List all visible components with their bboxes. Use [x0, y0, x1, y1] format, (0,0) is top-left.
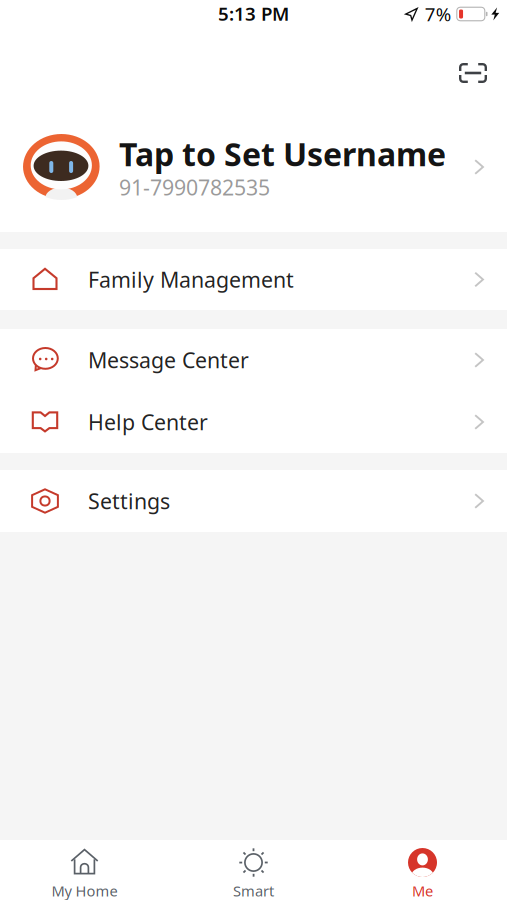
- button[interactable]: Help Center: [0, 391, 507, 453]
- staticText: My Home: [51, 881, 117, 900]
- button[interactable]: Message Center: [0, 329, 507, 391]
- button[interactable]: Settings: [0, 470, 507, 532]
- staticText: Message Center: [88, 346, 249, 374]
- staticText: 7%: [425, 2, 452, 26]
- staticText: Smart: [233, 881, 274, 900]
- staticText: Tap to Set Username: [119, 133, 446, 175]
- staticText: Settings: [88, 487, 170, 515]
- button[interactable]: Scan: [454, 60, 492, 86]
- staticText: Me: [412, 881, 433, 900]
- button[interactable]: Family Management: [0, 249, 507, 310]
- button[interactable]: Me: [338, 840, 507, 900]
- staticText: Help Center: [88, 408, 208, 436]
- button[interactable]: Smart: [169, 840, 338, 900]
- button[interactable]: My Home: [0, 840, 169, 900]
- button[interactable]: Tap to Set Username: [0, 86, 507, 232]
- staticText: 5:13 PM: [218, 1, 289, 26]
- staticText: Family Management: [88, 265, 294, 294]
- staticText: 91-7990782535: [119, 173, 270, 201]
